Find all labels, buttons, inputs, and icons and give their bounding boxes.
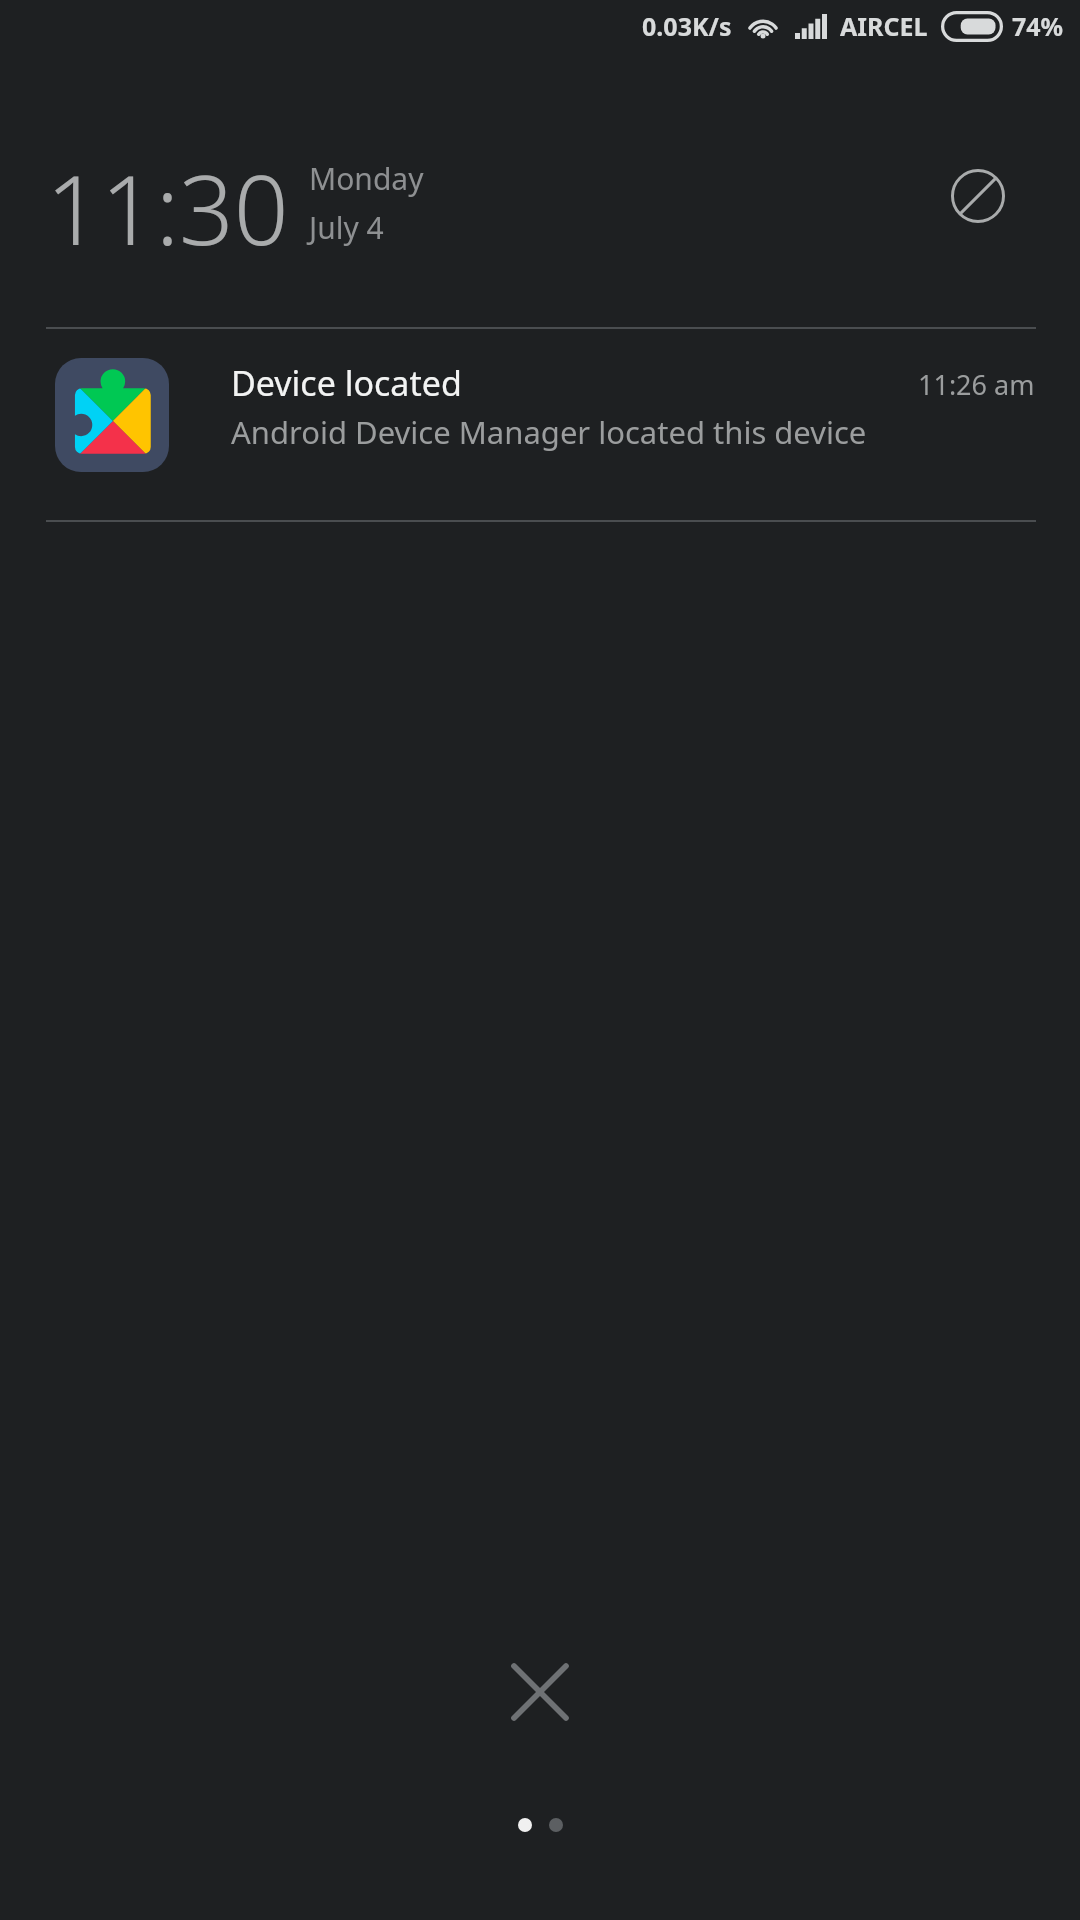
staticText: Device located [231, 360, 462, 406]
staticText: Android Device Manager located this devi… [231, 411, 867, 453]
button[interactable]: Close notifications [492, 1644, 588, 1740]
staticText: 74% [1012, 9, 1064, 43]
button[interactable]: Do not disturb [948, 166, 1008, 226]
staticText: AIRCEL [840, 9, 928, 43]
staticText: Monday [309, 158, 424, 199]
staticText: 0.03K/s [642, 9, 732, 43]
staticText: 11:26 am [918, 366, 1035, 403]
staticText: 11:30 [46, 142, 289, 273]
button[interactable]: Device located [0, 330, 1080, 520]
staticText: July 4 [309, 207, 384, 248]
